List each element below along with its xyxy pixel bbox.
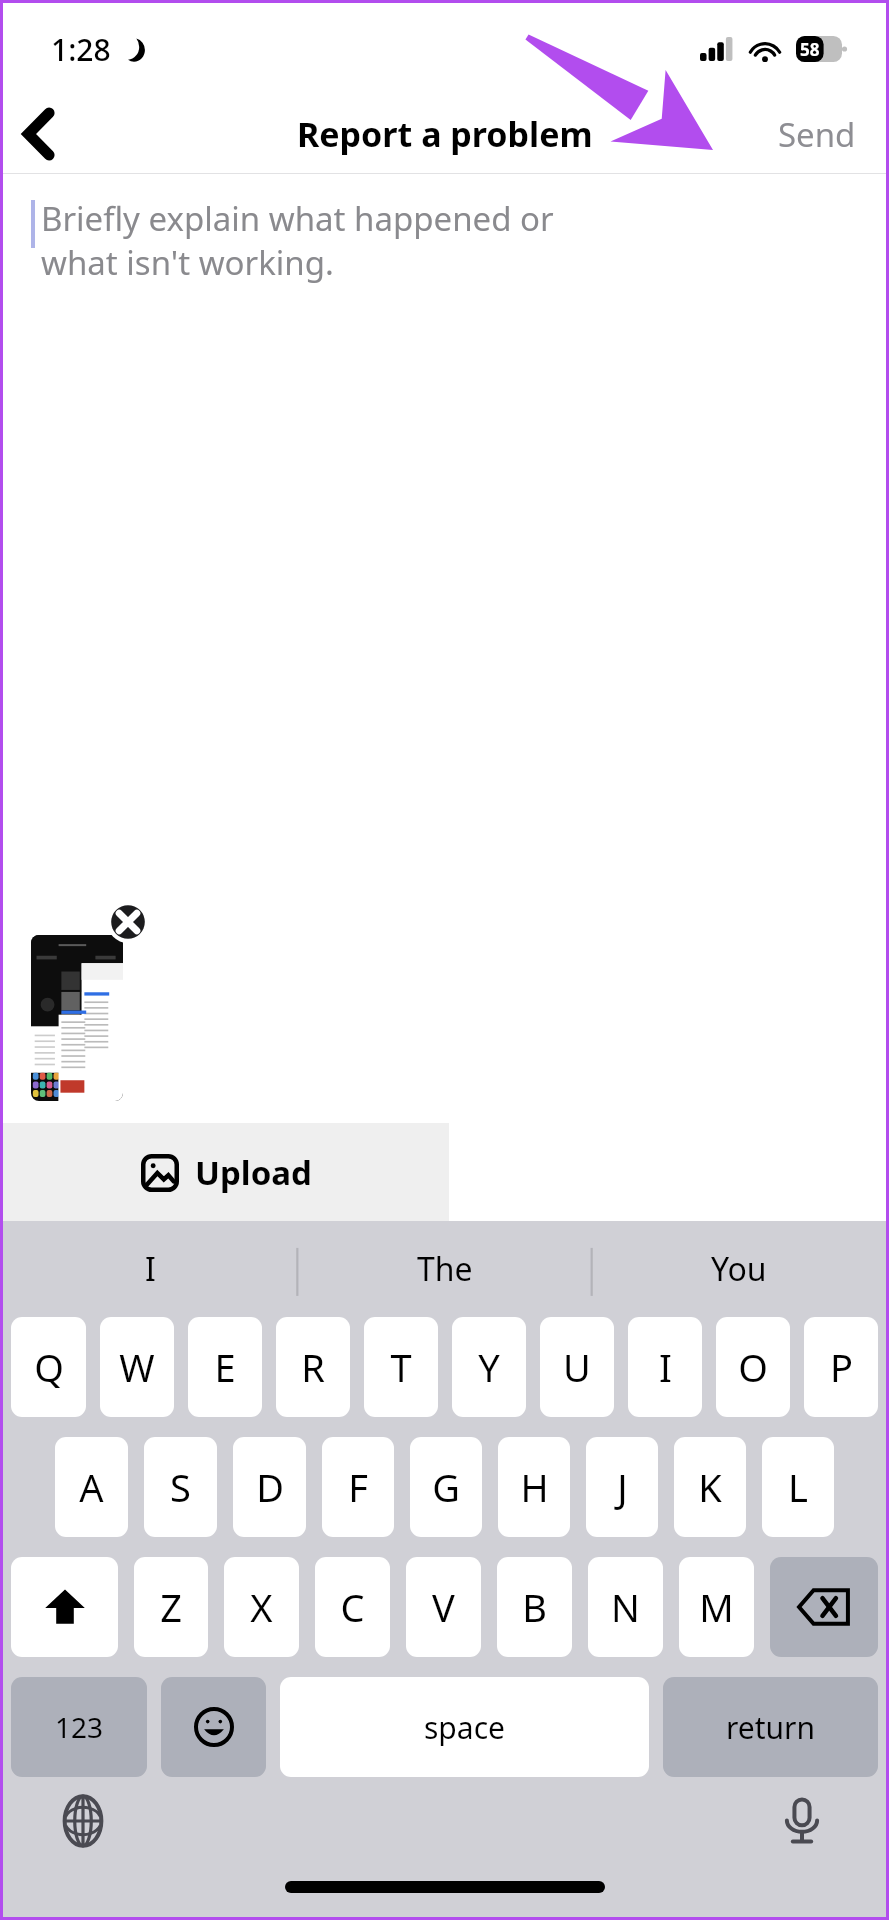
staticText: V [432, 1581, 455, 1633]
button[interactable]: Back [3, 98, 75, 170]
button[interactable]: P [804, 1317, 878, 1417]
staticText: M [699, 1581, 734, 1633]
staticText: I [659, 1341, 672, 1393]
staticText: U [563, 1341, 591, 1393]
button[interactable]: E [188, 1317, 262, 1417]
button[interactable]: space [280, 1677, 649, 1777]
staticText: C [340, 1581, 365, 1633]
staticText: N [611, 1581, 640, 1633]
staticText: Briefly explain what happened or what is… [41, 196, 601, 284]
button[interactable]: Backspace [770, 1557, 878, 1657]
staticText: X [250, 1581, 273, 1633]
button[interactable]: Q [11, 1317, 86, 1417]
staticText: P [830, 1341, 853, 1393]
staticText: 1:28 [51, 29, 111, 70]
staticText: You [711, 1247, 767, 1291]
button[interactable]: D [233, 1437, 306, 1537]
staticText: D [256, 1461, 284, 1513]
button[interactable]: return [663, 1677, 878, 1777]
button[interactable]: The [298, 1221, 592, 1317]
button[interactable]: H [498, 1437, 570, 1537]
button[interactable]: R [276, 1317, 350, 1417]
button[interactable]: Change keyboard [53, 1791, 113, 1851]
button[interactable]: A [55, 1437, 128, 1537]
button[interactable]: F [322, 1437, 394, 1537]
button[interactable]: G [410, 1437, 482, 1537]
staticText: L [788, 1461, 808, 1513]
staticText: The [417, 1247, 473, 1291]
button[interactable]: Z [134, 1557, 208, 1657]
button[interactable]: Upload [3, 1123, 449, 1221]
button[interactable]: K [674, 1437, 746, 1537]
staticText: H [520, 1461, 549, 1513]
button[interactable]: Send [748, 100, 886, 169]
staticText: B [522, 1581, 547, 1633]
button[interactable]: U [540, 1317, 614, 1417]
staticText: A [79, 1461, 104, 1513]
button[interactable]: O [716, 1317, 790, 1417]
button[interactable]: L [762, 1437, 834, 1537]
staticText: J [617, 1461, 628, 1513]
button[interactable]: T [364, 1317, 438, 1417]
staticText: Y [478, 1341, 500, 1393]
button[interactable]: Dictate [772, 1791, 832, 1851]
staticText: Upload [195, 1150, 312, 1195]
button[interactable]: I [628, 1317, 702, 1417]
button[interactable]: 123 [11, 1677, 147, 1777]
button[interactable]: C [315, 1557, 390, 1657]
button[interactable]: N [588, 1557, 663, 1657]
staticText: F [348, 1461, 368, 1513]
staticText: W [119, 1341, 155, 1393]
staticText: O [738, 1341, 768, 1393]
staticText: E [214, 1341, 236, 1393]
button[interactable]: B [497, 1557, 572, 1657]
button[interactable]: Shift [11, 1557, 118, 1657]
staticText: Q [34, 1341, 64, 1393]
button[interactable]: Y [452, 1317, 526, 1417]
button[interactable]: J [586, 1437, 658, 1537]
staticText: return [726, 1707, 816, 1748]
staticText: Send [778, 112, 856, 157]
button[interactable]: S [144, 1437, 217, 1537]
button[interactable] [31, 935, 123, 1101]
button[interactable]: Emoji [161, 1677, 266, 1777]
staticText: Z [160, 1581, 182, 1633]
staticText: 123 [55, 1708, 104, 1746]
button[interactable]: X [224, 1557, 299, 1657]
staticText: 58 [800, 38, 820, 61]
staticText: R [301, 1341, 325, 1393]
staticText: I [145, 1247, 156, 1291]
button[interactable]: You [592, 1221, 886, 1317]
staticText: S [170, 1461, 191, 1513]
staticText: space [424, 1707, 505, 1748]
staticText: T [390, 1341, 412, 1393]
staticText: Report a problem [297, 111, 593, 157]
button[interactable]: Remove attachment [107, 901, 149, 943]
button[interactable]: V [406, 1557, 481, 1657]
button[interactable]: M [679, 1557, 754, 1657]
staticText: G [432, 1461, 460, 1513]
staticText: K [698, 1461, 722, 1513]
button[interactable]: I [3, 1221, 298, 1317]
button[interactable]: W [100, 1317, 174, 1417]
